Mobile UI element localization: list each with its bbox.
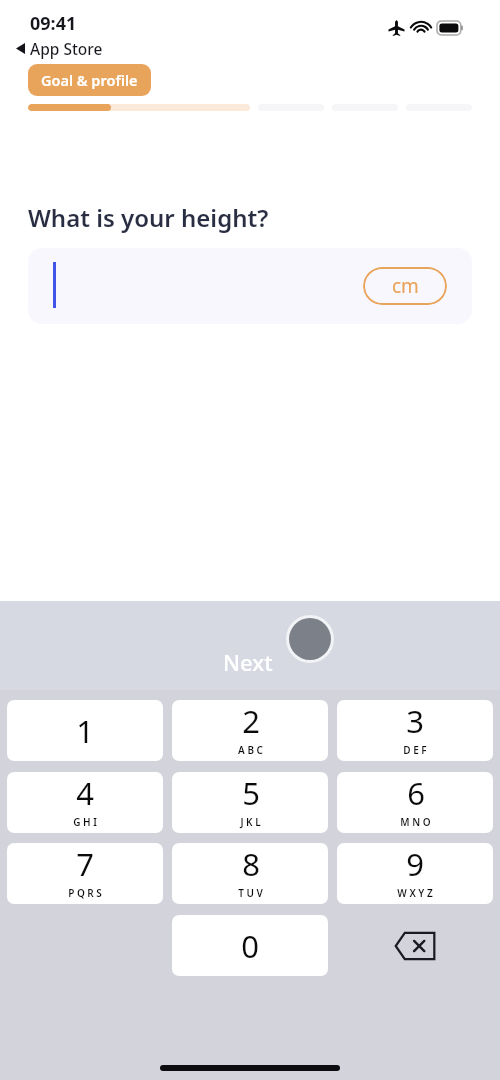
- button[interactable]: 9: [337, 843, 493, 904]
- button[interactable]: cm: [363, 267, 447, 305]
- staticText: 09:41: [30, 11, 77, 36]
- staticText: 0: [241, 925, 259, 967]
- staticText: 6: [407, 772, 425, 814]
- button[interactable]: 2: [172, 700, 328, 761]
- staticText: W X Y Z: [397, 886, 433, 900]
- staticText: 5: [242, 772, 260, 814]
- staticText: Goal & profile: [41, 70, 138, 90]
- staticText: A B C: [238, 743, 263, 757]
- staticText: 3: [406, 700, 424, 742]
- staticText: 9: [406, 843, 424, 885]
- staticText: cm: [392, 273, 419, 299]
- staticText: App Store: [30, 38, 103, 59]
- staticText: 1: [76, 710, 94, 752]
- button[interactable]: 7: [7, 843, 163, 904]
- button[interactable]: 6: [337, 772, 493, 833]
- button[interactable]: 8: [172, 843, 328, 904]
- staticText: 8: [242, 843, 260, 885]
- button[interactable]: Goal & profile: [28, 64, 151, 96]
- staticText: 2: [242, 700, 260, 742]
- staticText: 4: [76, 772, 94, 814]
- staticText: P Q R S: [68, 886, 102, 900]
- staticText: G H I: [73, 815, 97, 829]
- button[interactable]: 0: [172, 915, 328, 976]
- staticText: J K L: [240, 815, 261, 829]
- button[interactable]: 5: [172, 772, 328, 833]
- staticText: T U V: [238, 886, 263, 900]
- staticText: What is your height?: [28, 201, 269, 234]
- button[interactable]: Next: [215, 643, 281, 681]
- staticText: 7: [76, 843, 94, 885]
- button[interactable]: App Store: [14, 36, 105, 61]
- staticText: D E F: [403, 743, 427, 757]
- button[interactable]: 4: [7, 772, 163, 833]
- button[interactable]: 1: [7, 700, 163, 761]
- button[interactable]: 3: [337, 700, 493, 761]
- button[interactable]: cm: [28, 248, 472, 324]
- staticText: M N O: [400, 815, 431, 829]
- staticText: Next: [223, 647, 273, 677]
- button[interactable]: Delete: [337, 915, 493, 976]
